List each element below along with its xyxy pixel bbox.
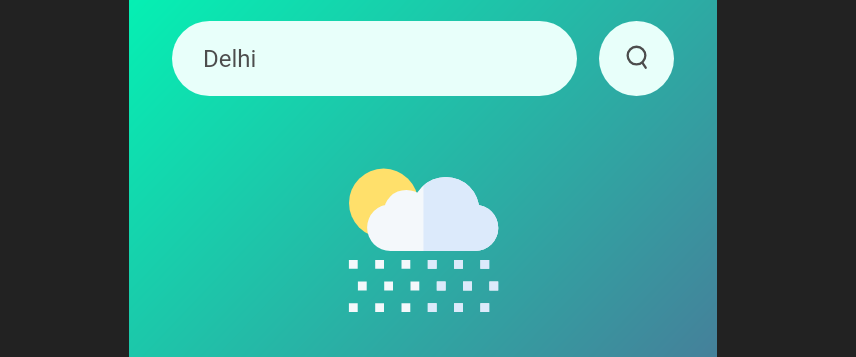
staticText: Delhi (203, 45, 257, 73)
button[interactable]: Search (599, 21, 674, 96)
button[interactable]: Delhi (172, 21, 577, 96)
other: Rain showers (129, 0, 717, 357)
